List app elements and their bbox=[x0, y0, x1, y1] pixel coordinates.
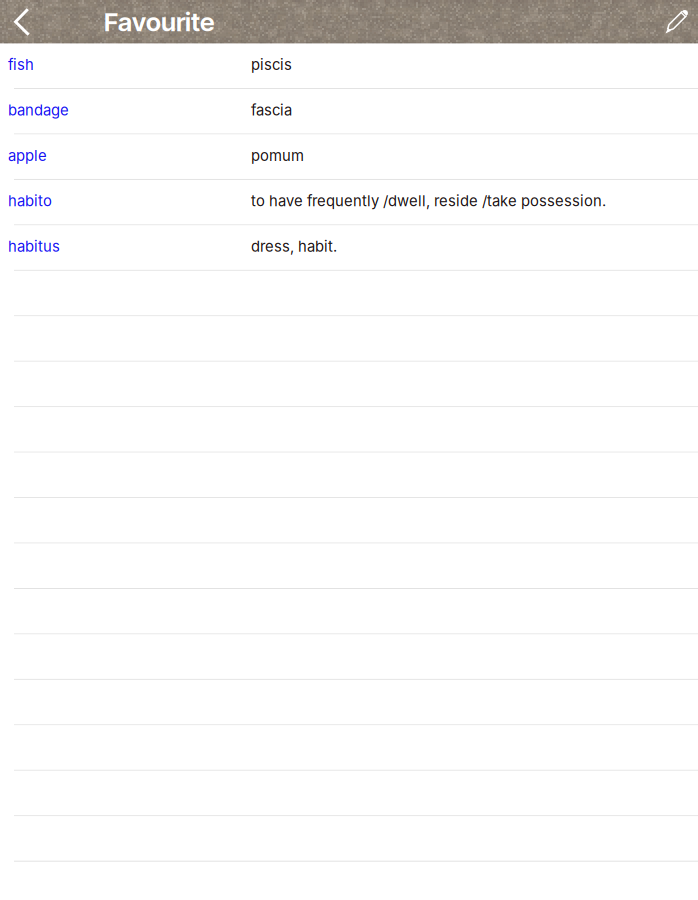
staticText: habitus bbox=[8, 237, 60, 255]
staticText: pomum bbox=[251, 147, 304, 164]
button[interactable]: apple bbox=[0, 134, 698, 180]
button[interactable]: fish bbox=[0, 44, 698, 89]
staticText: bandage bbox=[8, 101, 69, 119]
staticText: piscis bbox=[251, 56, 292, 74]
staticText: habito bbox=[8, 192, 52, 210]
staticText: Favourite bbox=[104, 6, 214, 37]
button[interactable]: habitus bbox=[0, 225, 698, 271]
staticText: dress, habit. bbox=[251, 237, 337, 255]
button[interactable]: Edit bbox=[647, 0, 698, 44]
staticText: to have frequently /dwell, reside /take … bbox=[251, 192, 606, 210]
staticText: fascia bbox=[251, 101, 292, 119]
staticText: fish bbox=[8, 56, 34, 74]
button[interactable]: habito bbox=[0, 180, 698, 225]
button[interactable]: Back bbox=[0, 0, 48, 44]
button[interactable]: bandage bbox=[0, 89, 698, 135]
staticText: apple bbox=[8, 147, 47, 164]
